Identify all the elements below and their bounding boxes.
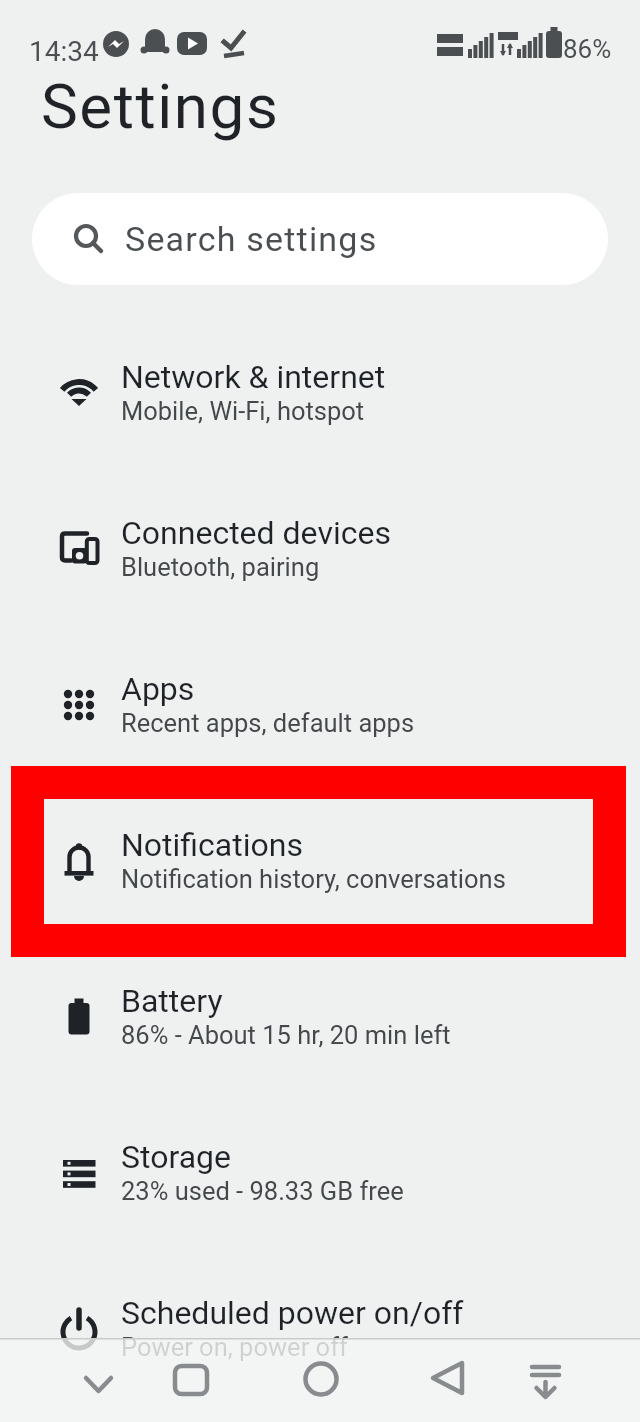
staticText: Apps bbox=[121, 670, 195, 708]
staticText: Bluetooth, pairing bbox=[121, 552, 320, 582]
staticText: Connected devices bbox=[121, 514, 391, 552]
button[interactable]: Network & internet bbox=[0, 314, 640, 470]
staticText: Settings bbox=[41, 70, 280, 143]
staticText: Recent apps, default apps bbox=[121, 708, 415, 738]
staticText: Notifications bbox=[121, 826, 303, 864]
staticText: Power on, power off bbox=[121, 1332, 348, 1362]
staticText: Scheduled power on/off bbox=[121, 1294, 464, 1332]
button[interactable]: Notifications bbox=[0, 782, 640, 938]
staticText: 86% bbox=[563, 34, 612, 64]
button[interactable]: Battery bbox=[0, 938, 640, 1094]
staticText: Search settings bbox=[125, 219, 378, 259]
staticText: 14:34 bbox=[29, 35, 99, 68]
staticText: Battery bbox=[121, 982, 223, 1020]
staticText: 23% used - 98.33 GB free bbox=[121, 1176, 404, 1206]
staticText: Storage bbox=[121, 1138, 231, 1176]
staticText: 86% - About 15 hr, 20 min left bbox=[121, 1020, 451, 1050]
button[interactable] bbox=[0, 1338, 640, 1422]
button[interactable]: Scheduled power on/off bbox=[0, 1250, 640, 1406]
staticText: Notification history, conversations bbox=[121, 864, 506, 894]
button[interactable]: Apps bbox=[0, 626, 640, 782]
staticText: Network & internet bbox=[121, 358, 386, 396]
button[interactable]: Search settings bbox=[32, 193, 608, 285]
button[interactable]: Connected devices bbox=[0, 470, 640, 626]
button[interactable]: Storage bbox=[0, 1094, 640, 1250]
staticText: Mobile, Wi-Fi, hotspot bbox=[121, 396, 365, 426]
